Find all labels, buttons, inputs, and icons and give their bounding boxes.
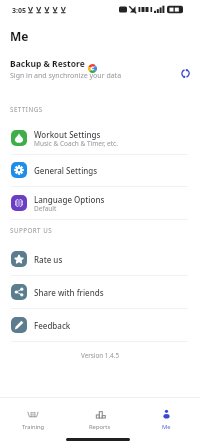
staticText: Language Options	[34, 194, 105, 205]
staticText: Training	[22, 423, 45, 431]
staticText: Me	[10, 28, 29, 44]
button[interactable]: Share with friends	[0, 276, 200, 308]
staticText: Version 1.4.5	[0, 351, 200, 360]
button[interactable]: Backup & Restore	[0, 52, 200, 86]
button[interactable]: General Settings	[0, 154, 200, 186]
button[interactable]: Me	[133, 403, 200, 431]
staticText: SUPPORT US	[10, 226, 53, 234]
staticText: Reports	[89, 423, 111, 431]
staticText: Music & Coach & Timer, etc.	[34, 139, 118, 148]
button[interactable]: Rate us	[0, 243, 200, 275]
staticText: 3:05	[12, 6, 26, 16]
staticText: Sign in and synchronize your data	[10, 71, 122, 81]
staticText: Default	[34, 204, 57, 213]
staticText: Rate us	[34, 254, 63, 265]
staticText: Workout Settings	[34, 129, 101, 140]
staticText: General Settings	[34, 165, 98, 176]
button[interactable]: Feedback	[0, 309, 200, 341]
button[interactable]: Reports	[66, 403, 133, 431]
button[interactable]: Language Options	[0, 187, 200, 219]
button[interactable]: Sync	[176, 64, 194, 82]
button[interactable]: Workout Settings	[0, 122, 200, 154]
staticText: SETTINGS	[10, 105, 43, 113]
staticText: Backup & Restore	[10, 58, 85, 70]
staticText: Feedback	[34, 320, 71, 331]
staticText: Me	[162, 423, 171, 431]
button[interactable]: Training	[0, 403, 66, 431]
staticText: Share with friends	[34, 287, 104, 298]
